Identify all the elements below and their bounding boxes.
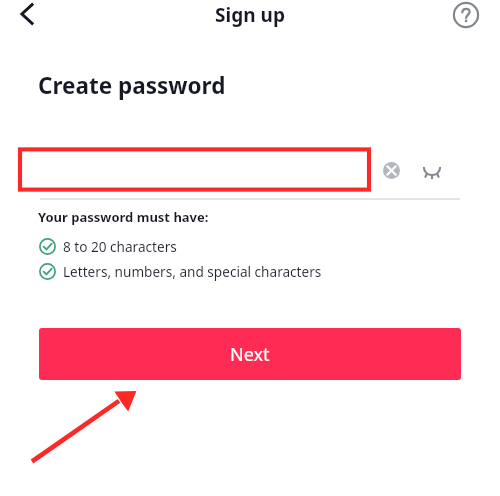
button[interactable]: Show password xyxy=(418,156,446,184)
button[interactable]: Help xyxy=(446,0,486,35)
staticText: Sign up xyxy=(0,2,500,28)
staticText: Create password xyxy=(38,70,226,101)
staticText: Your password must have: xyxy=(38,208,209,226)
staticText: 8 to 20 characters xyxy=(63,237,177,256)
button[interactable]: Password xyxy=(40,152,370,188)
button[interactable]: Clear text xyxy=(377,156,405,184)
staticText: Letters, numbers, and special characters xyxy=(63,262,322,281)
button[interactable]: Back xyxy=(7,0,47,34)
button[interactable]: Next xyxy=(39,328,461,380)
staticText: Next xyxy=(230,342,270,367)
